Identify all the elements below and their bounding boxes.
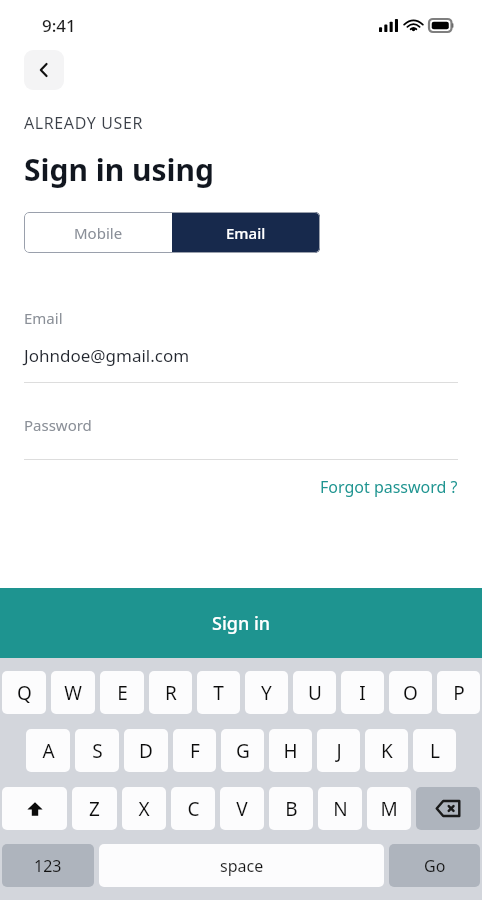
staticText: N: [333, 796, 348, 822]
staticText: K: [381, 738, 393, 764]
staticText: D: [139, 738, 153, 764]
button[interactable]: R: [149, 671, 192, 714]
staticText: F: [190, 738, 200, 764]
staticText: I: [359, 680, 366, 706]
button[interactable]: J: [317, 729, 360, 772]
staticText: H: [283, 738, 298, 764]
staticText: Sign in using: [24, 149, 215, 190]
button[interactable]: H: [269, 729, 312, 772]
staticText: Y: [261, 680, 272, 706]
button[interactable]: Z: [72, 787, 117, 830]
staticText: X: [138, 796, 150, 822]
button[interactable]: C: [171, 787, 215, 830]
button[interactable]: Email: [172, 212, 320, 253]
button[interactable]: M: [367, 787, 411, 830]
button[interactable]: P: [437, 671, 480, 714]
staticText: T: [213, 680, 224, 706]
button[interactable]: T: [197, 671, 240, 714]
staticText: Mobile: [74, 223, 123, 243]
button[interactable]: G: [221, 729, 264, 772]
button[interactable]: O: [389, 671, 432, 714]
staticText: space: [220, 855, 264, 877]
staticText: Email: [24, 308, 63, 328]
button[interactable]: X: [122, 787, 166, 830]
button[interactable]: Back: [24, 50, 64, 90]
button[interactable]: Forgot password ?: [320, 476, 458, 498]
staticText: ALREADY USER: [24, 112, 143, 134]
button[interactable]: Johndoe@gmail.com: [24, 344, 458, 367]
staticText: Email: [226, 223, 266, 243]
staticText: A: [42, 738, 55, 764]
button[interactable]: N: [318, 787, 362, 830]
button[interactable]: Backspace: [416, 787, 480, 830]
staticText: S: [92, 738, 103, 764]
button[interactable]: W: [51, 671, 95, 714]
staticText: U: [308, 680, 322, 706]
button[interactable]: F: [173, 729, 216, 772]
staticText: Z: [89, 796, 100, 822]
staticText: E: [117, 680, 128, 706]
button[interactable]: S: [75, 729, 119, 772]
button[interactable]: L: [413, 729, 456, 772]
button[interactable]: space: [99, 844, 384, 887]
staticText: Go: [424, 855, 446, 877]
staticText: M: [380, 796, 398, 822]
staticText: O: [403, 680, 418, 706]
button[interactable]: A: [26, 729, 70, 772]
button[interactable]: 123: [2, 844, 94, 887]
button[interactable]: V: [220, 787, 264, 830]
button[interactable]: E: [100, 671, 144, 714]
button[interactable]: Shift: [2, 787, 67, 830]
staticText: C: [187, 796, 200, 822]
staticText: V: [236, 796, 248, 822]
button[interactable]: B: [269, 787, 313, 830]
staticText: Q: [17, 680, 32, 706]
button[interactable]: K: [365, 729, 408, 772]
staticText: Sign in: [212, 611, 271, 636]
staticText: B: [285, 796, 298, 822]
staticText: J: [336, 738, 342, 764]
button[interactable]: I: [341, 671, 384, 714]
staticText: 123: [34, 855, 62, 877]
button[interactable]: U: [293, 671, 336, 714]
staticText: R: [165, 680, 177, 706]
button[interactable]: Y: [245, 671, 288, 714]
button[interactable]: Go: [389, 844, 480, 887]
staticText: W: [64, 680, 82, 706]
staticText: P: [453, 680, 465, 706]
staticText: G: [236, 738, 250, 764]
button[interactable]: Password: [24, 415, 458, 435]
button[interactable]: Q: [2, 671, 46, 714]
button[interactable]: Sign in: [0, 588, 482, 658]
button[interactable]: Mobile: [24, 212, 172, 253]
button[interactable]: D: [124, 729, 168, 772]
staticText: 9:41: [42, 14, 76, 37]
staticText: L: [430, 738, 440, 764]
